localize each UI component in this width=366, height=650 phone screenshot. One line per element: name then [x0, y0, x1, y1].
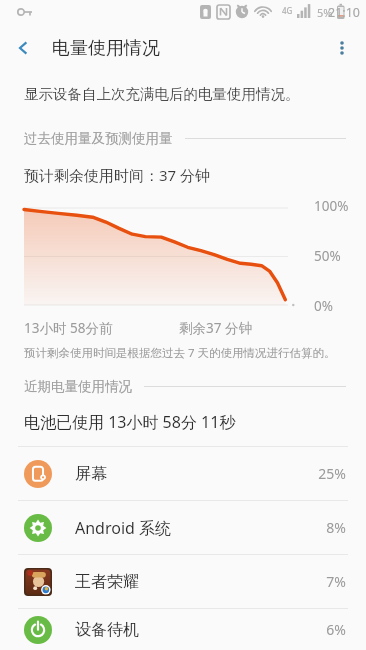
staticText: 100% [314, 197, 349, 215]
button[interactable]: 王者荣耀 [0, 555, 366, 608]
staticText: 6% [326, 620, 346, 639]
staticText: 13小时 58分前 [24, 319, 113, 337]
staticText: 0% [314, 297, 333, 315]
staticText: 8% [326, 518, 346, 537]
staticText: 电池已使用 13小时 58分 11秒 [24, 411, 236, 433]
staticText: 7% [326, 572, 346, 591]
staticText: 近期电量使用情况 [24, 378, 132, 395]
button[interactable]: 设备待机 [0, 609, 366, 650]
staticText: 5% [317, 5, 333, 20]
staticText: 屏幕 [75, 464, 107, 484]
staticText: 王者荣耀 [75, 572, 139, 592]
staticText: 显示设备自上次充满电后的电量使用情况。 [24, 85, 300, 103]
button[interactable]: 屏幕 [0, 447, 366, 500]
staticText: 预计剩余使用时间：37 分钟 [24, 165, 211, 185]
button[interactable]: More options [318, 24, 366, 72]
staticText: 电量使用情况 [52, 37, 160, 60]
staticText: 设备待机 [75, 620, 139, 640]
staticText: 预计剩余使用时间是根据您过去 7 天的使用情况进行估算的。 [24, 345, 336, 361]
button[interactable]: Android 系统 [0, 501, 366, 554]
staticText: 25% [318, 464, 346, 483]
staticText: 50% [314, 247, 341, 265]
staticText: 4G [282, 5, 293, 16]
staticText: 剩余37 分钟 [179, 319, 252, 337]
staticText: Android 系统 [75, 517, 172, 539]
button[interactable]: Back [0, 24, 48, 72]
staticText: 21:10 [328, 4, 360, 21]
staticText: 过去使用量及预测使用量 [24, 130, 173, 147]
